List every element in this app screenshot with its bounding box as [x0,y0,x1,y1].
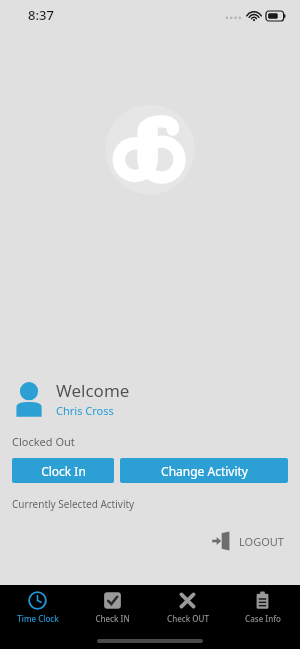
other: Check IN [103,591,122,610]
staticText: Chris Cross [56,403,114,418]
staticText: Welcome [56,379,130,402]
button[interactable]: Case Info [225,591,300,649]
other: Check OUT [178,591,197,610]
button[interactable]: Clock In [12,458,114,483]
staticText: 8:37 [28,6,54,24]
other: Logout [211,531,231,551]
staticText: Change Activity [161,463,248,479]
staticText: Case Info [245,613,281,624]
other: Case Info [253,591,272,610]
staticText: Clock In [41,463,86,479]
staticText: LOGOUT [239,534,284,549]
button[interactable]: Time Clock [0,591,75,649]
button[interactable]: Change Activity [120,458,288,483]
button[interactable]: Check IN [75,591,150,649]
staticText: Check OUT [167,613,209,624]
staticText: Time Clock [17,613,59,624]
staticText: Check IN [95,613,130,624]
staticText: Clocked Out [12,434,75,449]
other: Time Clock [28,591,47,610]
button[interactable]: Check OUT [150,591,225,649]
staticText: Currently Selected Activity [12,497,135,511]
other: App logo [110,108,190,188]
button[interactable]: Logout [207,528,288,554]
